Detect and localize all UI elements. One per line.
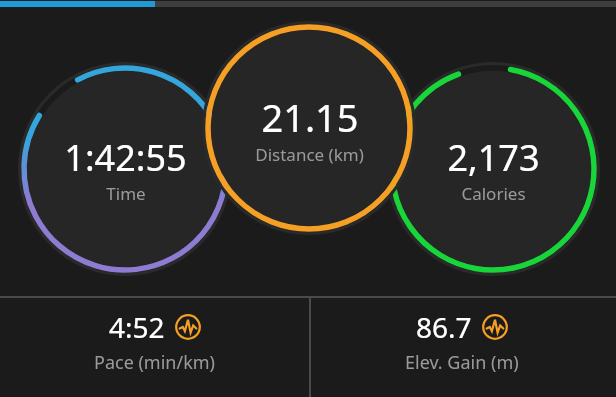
button[interactable]: 1:42:55 [25,119,225,219]
button[interactable]: 4:52 [0,297,308,397]
staticText: 86.7 [416,308,472,346]
staticText: 21.15 [261,91,359,143]
other: Activity graph [175,314,201,340]
button[interactable]: 86.7 [308,297,616,397]
staticText: 1:42:55 [64,133,187,182]
staticText: Time [106,182,146,205]
staticText: 4:52 [109,308,165,346]
button[interactable]: 2,173 [393,119,593,219]
staticText: Pace (min/km) [94,350,215,375]
other: Activity graph [482,314,508,340]
button[interactable]: 21.15 [209,78,409,178]
staticText: 2,173 [447,133,540,182]
staticText: Distance (km) [255,143,364,166]
staticText: Elev. Gain (m) [405,350,519,375]
staticText: Calories [461,182,526,205]
